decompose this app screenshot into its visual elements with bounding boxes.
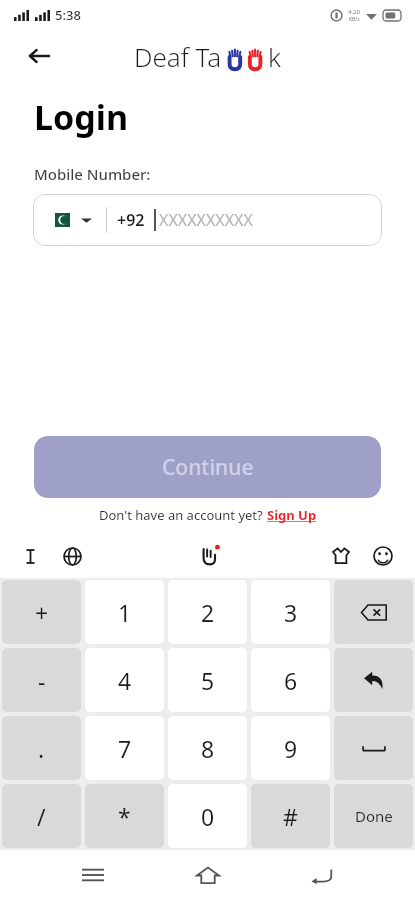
button[interactable]: Emoji xyxy=(367,540,399,572)
staticText: 4.20 xyxy=(348,8,360,16)
button[interactable]: Enter xyxy=(334,648,413,712)
staticText: k xyxy=(268,39,281,74)
staticText: 8 xyxy=(201,733,215,764)
button[interactable]: Recent apps xyxy=(71,853,115,897)
button[interactable]: 0 xyxy=(168,784,247,848)
button[interactable]: 3 xyxy=(251,580,330,644)
button[interactable]: 9 xyxy=(251,716,330,780)
button[interactable]: Back xyxy=(300,853,344,897)
staticText: +92 xyxy=(117,209,145,231)
staticText: 2 xyxy=(201,597,215,628)
staticText: 7 xyxy=(118,733,132,764)
staticText: Continue xyxy=(162,453,254,482)
staticText: Login xyxy=(34,94,129,140)
button[interactable]: Theme xyxy=(325,540,357,572)
button[interactable]: Change language xyxy=(56,540,88,572)
button[interactable]: . xyxy=(2,716,81,780)
button[interactable]: Sign Up xyxy=(267,506,317,524)
button[interactable]: Backspace xyxy=(334,580,413,644)
staticText: 5:38 xyxy=(55,6,81,24)
button[interactable]: 7 xyxy=(85,716,164,780)
staticText: KB/s xyxy=(349,16,360,23)
staticText: . xyxy=(38,733,45,764)
staticText: 5 xyxy=(201,665,215,696)
button[interactable]: Home xyxy=(186,853,230,897)
staticText: Sign Up xyxy=(267,506,317,524)
staticText: 1 xyxy=(118,597,132,628)
button[interactable]: # xyxy=(251,784,330,848)
staticText: Mobile Number: xyxy=(34,164,151,184)
button[interactable]: Space xyxy=(334,716,413,780)
staticText: XXXXXXXXXX xyxy=(159,209,253,231)
staticText: # xyxy=(283,801,298,832)
staticText: Done xyxy=(355,806,393,826)
staticText: + xyxy=(35,597,49,628)
staticText: 6 xyxy=(284,665,298,696)
button[interactable]: Text cursor xyxy=(14,540,46,572)
button[interactable]: 1 xyxy=(85,580,164,644)
button[interactable]: +92 xyxy=(33,194,382,246)
button[interactable]: Handwriting input xyxy=(191,539,225,573)
staticText: - xyxy=(38,665,46,696)
staticText: 9 xyxy=(284,733,298,764)
staticText: Deaf Ta xyxy=(134,39,222,74)
button[interactable]: 2 xyxy=(168,580,247,644)
button[interactable]: / xyxy=(2,784,81,848)
button[interactable]: Back xyxy=(22,39,56,73)
staticText: 0 xyxy=(201,801,215,832)
button[interactable]: Continue xyxy=(34,436,381,498)
staticText: 3 xyxy=(284,597,298,628)
button[interactable]: 8 xyxy=(168,716,247,780)
staticText: / xyxy=(37,801,46,832)
button[interactable]: - xyxy=(2,648,81,712)
button[interactable]: 5 xyxy=(168,648,247,712)
button[interactable]: 4 xyxy=(85,648,164,712)
button[interactable]: 6 xyxy=(251,648,330,712)
button[interactable]: * xyxy=(85,784,164,848)
staticText: * xyxy=(118,801,131,832)
staticText: Don't have an account yet? xyxy=(99,506,267,524)
button[interactable]: Done xyxy=(334,784,413,848)
button[interactable]: + xyxy=(2,580,81,644)
staticText: 4 xyxy=(118,665,132,696)
